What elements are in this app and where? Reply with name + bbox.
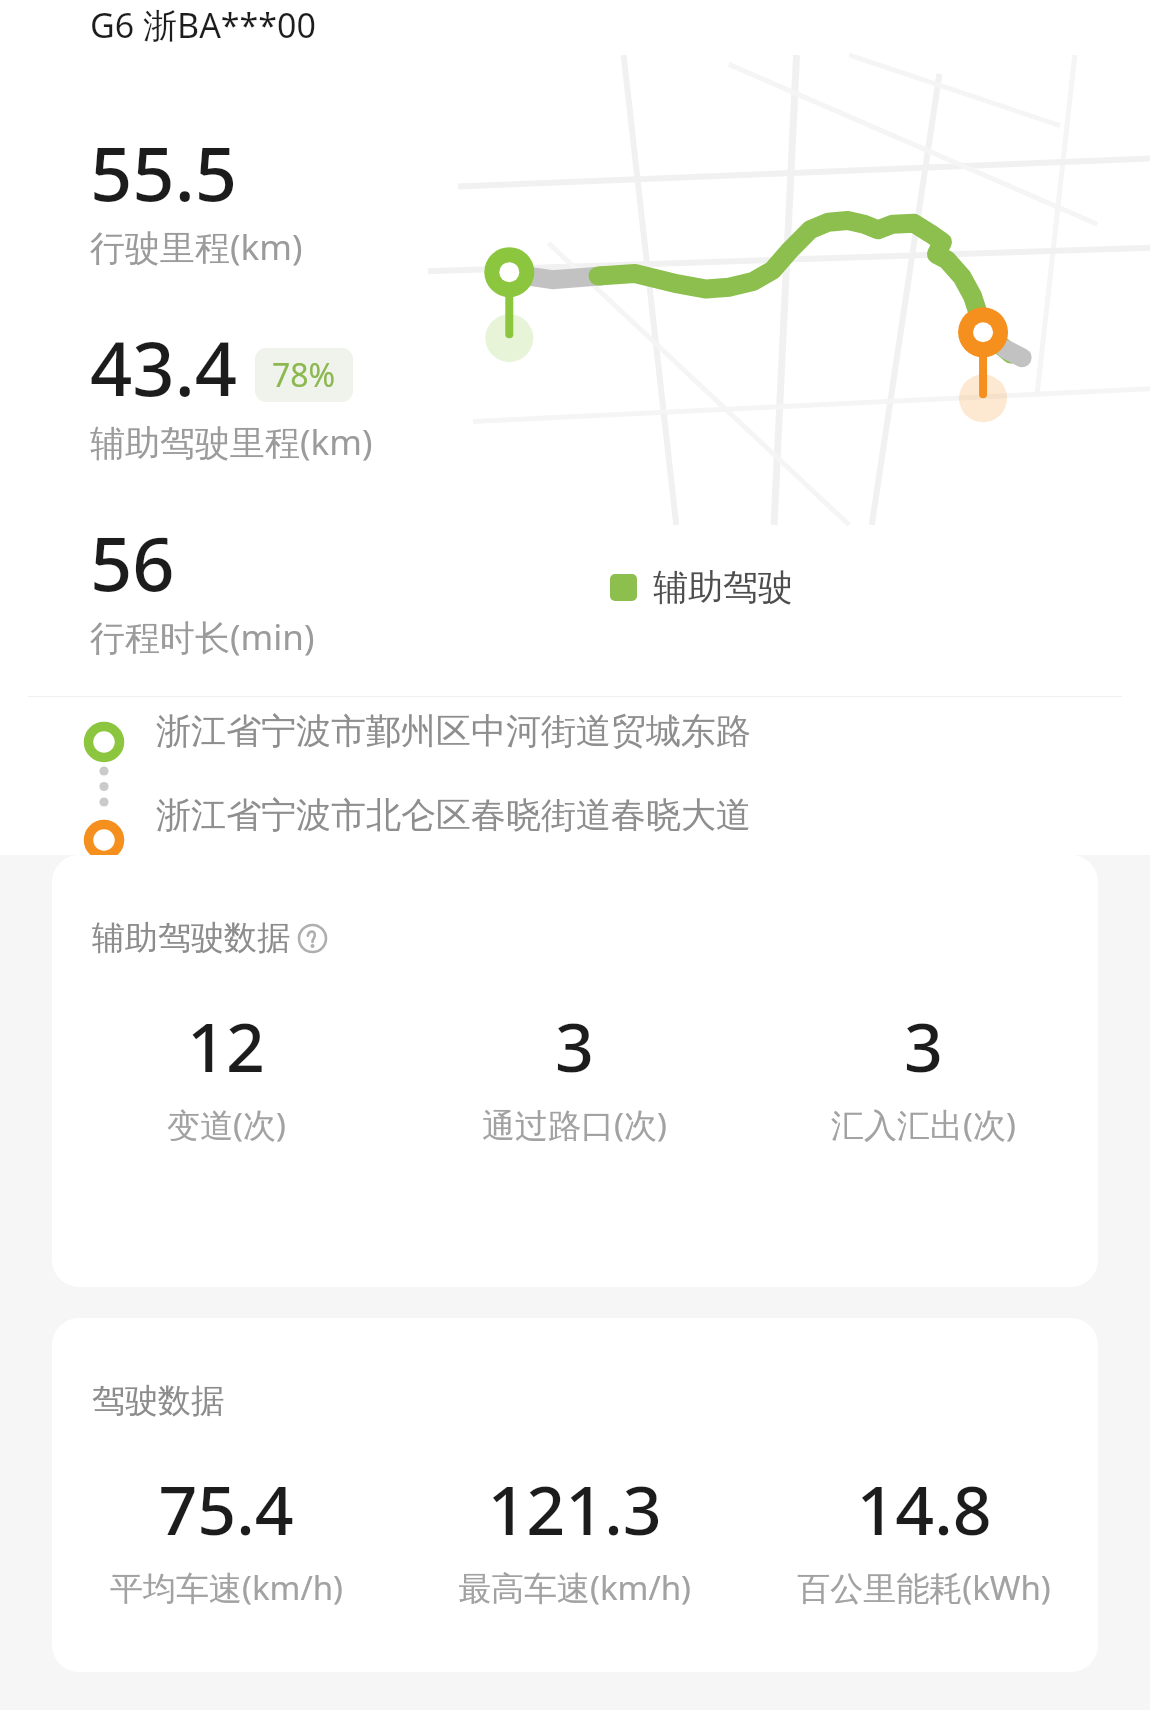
staticText: 辅助驾驶里程(km) bbox=[90, 418, 373, 466]
staticText: 121.3 bbox=[487, 1462, 662, 1555]
staticText: 平均车速(km/h) bbox=[110, 1565, 343, 1610]
staticText: 辅助驾驶 bbox=[653, 565, 793, 609]
staticText: 78% bbox=[272, 353, 336, 397]
staticText: G6 浙BA***00 bbox=[90, 2, 316, 48]
staticText: 辅助驾驶数据 bbox=[92, 917, 290, 959]
button[interactable]: 浙江省宁波市北仑区春晓街道春晓大道 bbox=[156, 793, 1150, 837]
staticText: 行程时长(min) bbox=[90, 613, 315, 661]
button[interactable]: 78% bbox=[255, 348, 353, 402]
staticText: 14.8 bbox=[856, 1462, 992, 1555]
staticText: 3 bbox=[555, 999, 594, 1092]
button[interactable]: 浙江省宁波市鄞州区中河街道贸城东路 bbox=[156, 709, 1150, 753]
staticText: 3 bbox=[904, 999, 943, 1092]
staticText: 通过路口(次) bbox=[482, 1102, 667, 1147]
button[interactable]: 辅助驾驶数据 bbox=[52, 855, 1098, 1287]
button[interactable]: Help about assisted driving data bbox=[297, 923, 328, 954]
button[interactable]: 辅助驾驶 bbox=[610, 565, 793, 609]
staticText: 75.4 bbox=[158, 1462, 294, 1555]
staticText: 12 bbox=[187, 999, 265, 1092]
staticText: 56 bbox=[90, 512, 175, 613]
staticText: 汇入汇出(次) bbox=[831, 1102, 1016, 1147]
staticText: 最高车速(km/h) bbox=[458, 1565, 691, 1610]
staticText: 行驶里程(km) bbox=[90, 223, 303, 271]
staticText: 驾驶数据 bbox=[92, 1380, 224, 1422]
staticText: 43.4 bbox=[90, 317, 238, 418]
staticText: 浙江省宁波市北仑区春晓街道春晓大道 bbox=[156, 793, 751, 837]
staticText: 变道(次) bbox=[167, 1102, 286, 1147]
staticText: 百公里能耗(kWh) bbox=[797, 1565, 1051, 1610]
button[interactable]: 驾驶数据 bbox=[52, 1318, 1098, 1672]
staticText: 55.5 bbox=[90, 122, 238, 223]
staticText: 浙江省宁波市鄞州区中河街道贸城东路 bbox=[156, 709, 751, 753]
